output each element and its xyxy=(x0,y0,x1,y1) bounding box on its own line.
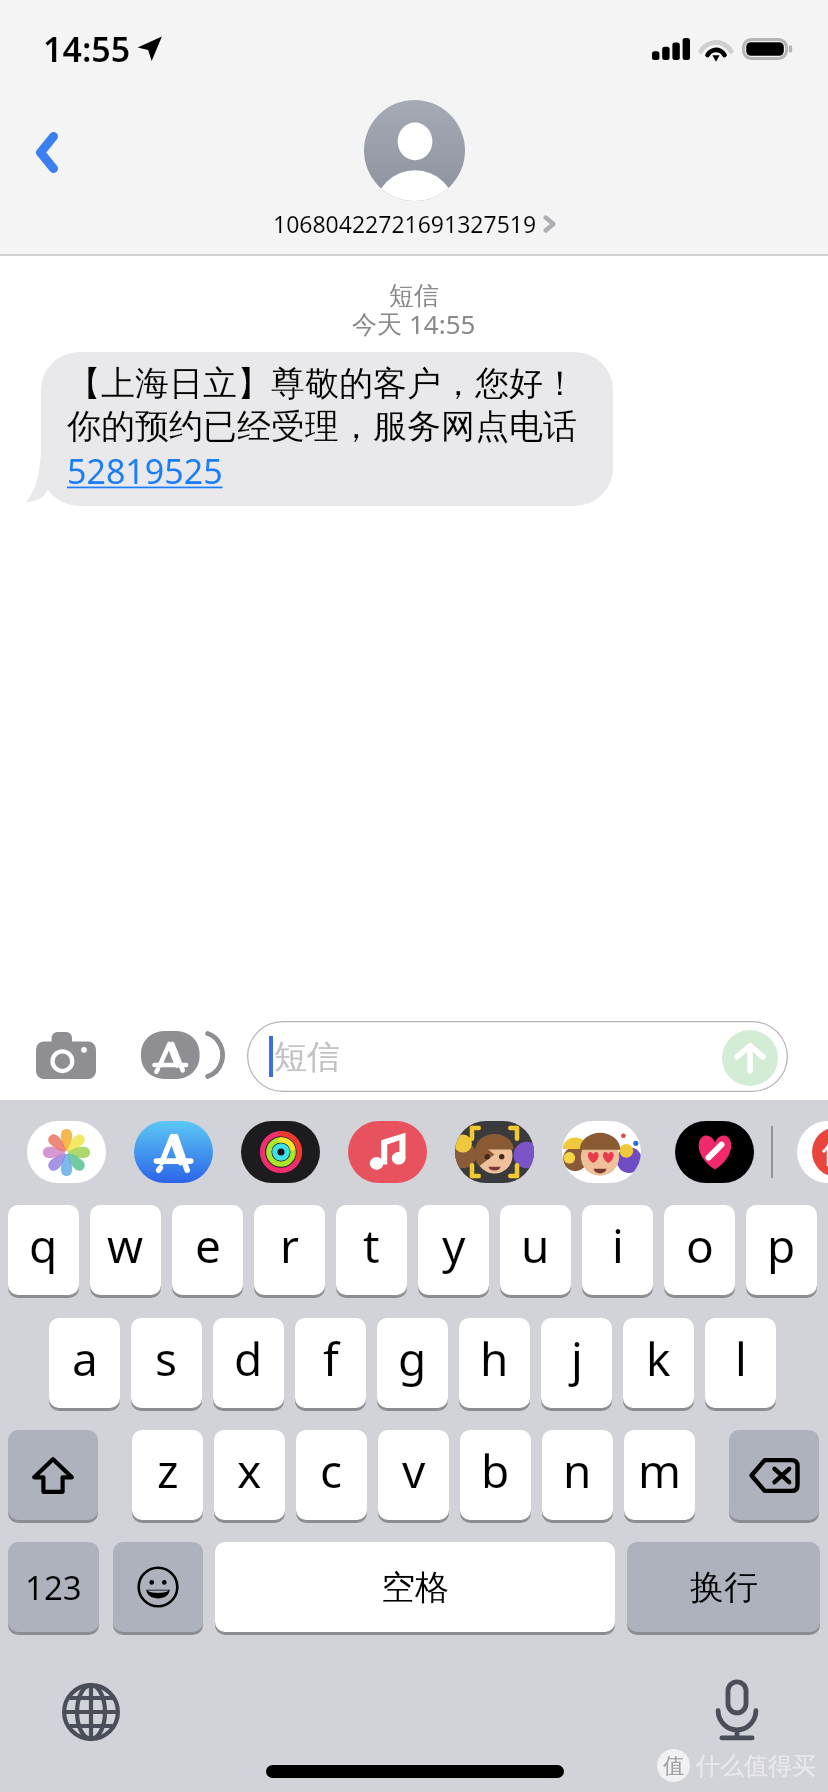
button[interactable]: e xyxy=(172,1205,243,1295)
button[interactable]: f xyxy=(295,1318,366,1408)
button[interactable]: t xyxy=(336,1205,407,1295)
button[interactable]: g xyxy=(377,1318,448,1408)
staticText: 10680422721691327519 xyxy=(273,208,537,239)
staticText: g xyxy=(398,1327,427,1390)
button[interactable]: d xyxy=(213,1318,284,1408)
staticText: b xyxy=(481,1439,510,1502)
button[interactable]: j xyxy=(541,1318,612,1408)
staticText: k xyxy=(646,1327,671,1390)
button[interactable]: h xyxy=(459,1318,530,1408)
staticText: 123 xyxy=(25,1565,82,1610)
button[interactable]: k xyxy=(623,1318,694,1408)
staticText: 短信 xyxy=(389,280,439,311)
staticText: i xyxy=(612,1214,624,1277)
button[interactable]: q xyxy=(8,1205,79,1295)
button[interactable]: z xyxy=(132,1430,203,1520)
button[interactable]: Change keyboard xyxy=(57,1678,125,1746)
staticText: 【上海日立】尊敬的客户，您好！ xyxy=(67,362,577,405)
button[interactable]: Music xyxy=(348,1121,427,1183)
staticText: e xyxy=(195,1214,221,1277)
button[interactable]: y xyxy=(418,1205,489,1295)
button[interactable] xyxy=(729,1430,819,1520)
staticText: c xyxy=(320,1439,343,1502)
button[interactable]: Dictation xyxy=(703,1676,771,1744)
staticText: t xyxy=(363,1214,380,1277)
button[interactable]: Contact avatar xyxy=(364,100,465,201)
staticText: 值 xyxy=(663,1753,684,1779)
staticText: x xyxy=(237,1439,262,1502)
staticText: 52819525 xyxy=(67,448,223,494)
staticText: q xyxy=(29,1214,58,1277)
staticText: m xyxy=(638,1439,682,1502)
staticText: 什么值得买 xyxy=(696,1751,816,1781)
button[interactable]: Fitness xyxy=(241,1121,320,1183)
button[interactable]: x xyxy=(214,1430,285,1520)
staticText: 空格 xyxy=(381,1566,449,1609)
staticText: 你的预约已经受理，服务网点电话 xyxy=(67,405,577,448)
staticText: o xyxy=(686,1214,714,1277)
button[interactable]: 123 xyxy=(8,1542,99,1632)
staticText: h xyxy=(480,1327,509,1390)
button[interactable]: 短信 xyxy=(247,1021,788,1092)
button[interactable]: 空格 xyxy=(215,1542,615,1632)
button[interactable]: Camera xyxy=(26,1023,106,1087)
button[interactable]: App xyxy=(797,1121,828,1183)
button[interactable]: u xyxy=(500,1205,571,1295)
staticText: 14:55 xyxy=(43,26,131,72)
button[interactable]: App Store xyxy=(131,1023,221,1087)
staticText: f xyxy=(323,1327,339,1390)
button[interactable]: l xyxy=(705,1318,776,1408)
staticText: r xyxy=(280,1214,299,1277)
staticText: 换行 xyxy=(690,1566,758,1609)
button[interactable] xyxy=(8,1430,98,1520)
button[interactable] xyxy=(113,1542,203,1632)
button[interactable]: Back xyxy=(7,112,87,192)
staticText: 14:55 xyxy=(409,306,476,341)
button[interactable]: m xyxy=(624,1430,695,1520)
button[interactable]: 换行 xyxy=(627,1542,820,1632)
staticText: n xyxy=(563,1439,592,1502)
staticText: u xyxy=(521,1214,550,1277)
button[interactable]: r xyxy=(254,1205,325,1295)
button[interactable]: v xyxy=(378,1430,449,1520)
staticText: y xyxy=(442,1214,466,1277)
button[interactable]: App Store xyxy=(134,1121,213,1183)
button[interactable]: Emoji stickers xyxy=(562,1121,641,1183)
button[interactable]: Memoji xyxy=(455,1121,534,1183)
button[interactable]: Photos xyxy=(27,1121,106,1183)
button[interactable]: n xyxy=(542,1430,613,1520)
staticText: w xyxy=(107,1214,144,1277)
button[interactable]: w xyxy=(90,1205,161,1295)
staticText: l xyxy=(735,1327,747,1390)
button[interactable]: a xyxy=(49,1318,120,1408)
button[interactable]: o xyxy=(664,1205,735,1295)
staticText: 短信 xyxy=(274,1036,340,1078)
staticText: d xyxy=(234,1327,263,1390)
button[interactable]: i xyxy=(582,1205,653,1295)
staticText: v xyxy=(402,1439,426,1502)
staticText: a xyxy=(72,1327,98,1390)
staticText: j xyxy=(571,1327,583,1390)
button[interactable]: 【上海日立】尊敬的客户，您好！ xyxy=(41,352,613,506)
button[interactable]: c xyxy=(296,1430,367,1520)
button[interactable]: p xyxy=(746,1205,817,1295)
button[interactable]: Health xyxy=(675,1121,754,1183)
staticText: s xyxy=(155,1327,178,1390)
staticText: p xyxy=(767,1214,796,1277)
button[interactable]: b xyxy=(460,1430,531,1520)
button[interactable]: s xyxy=(131,1318,202,1408)
staticText: z xyxy=(157,1439,179,1502)
button[interactable]: Send xyxy=(722,1030,778,1086)
staticText: 值 xyxy=(822,1133,828,1171)
staticText: 今天 xyxy=(352,306,409,340)
